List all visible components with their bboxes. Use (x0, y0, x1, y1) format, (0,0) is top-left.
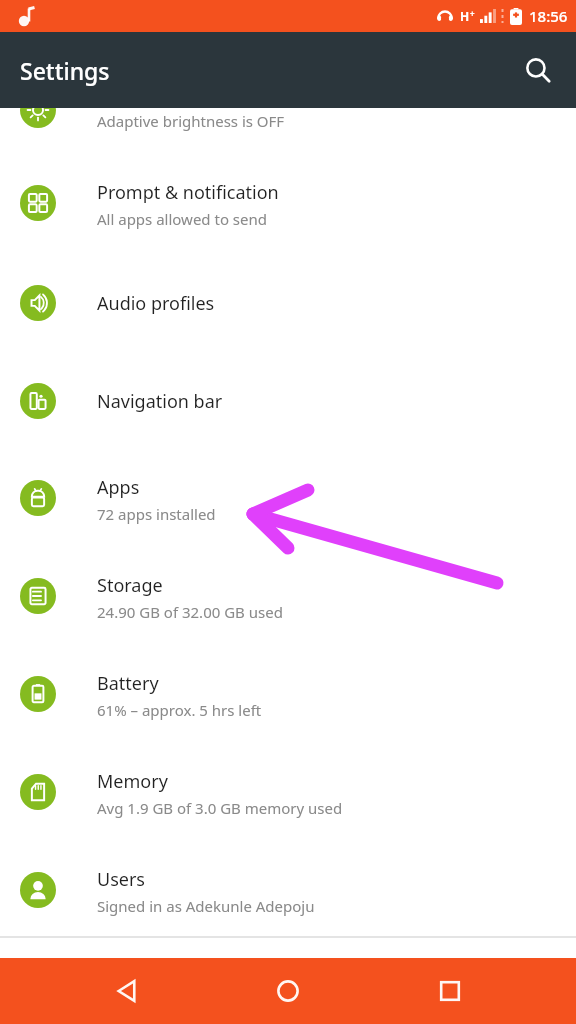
button[interactable]: Recent apps (415, 958, 485, 1024)
staticText: Settings (20, 55, 110, 86)
staticText: Battery (97, 671, 159, 696)
staticText: Adaptive brightness is OFF (97, 111, 285, 131)
button[interactable]: Apps (0, 449, 576, 547)
button[interactable]: Battery (0, 645, 576, 743)
button[interactable]: Audio profiles (0, 254, 576, 352)
staticText: Users (97, 867, 145, 892)
staticText: Apps (97, 475, 140, 500)
staticText: Signed in as Adekunle Adepoju (97, 896, 315, 916)
button[interactable]: Back (92, 958, 162, 1024)
staticText: H (460, 8, 470, 24)
button[interactable]: Navigation bar (0, 352, 576, 450)
staticText: 24.90 GB of 32.00 GB used (97, 602, 283, 622)
button[interactable]: Display (0, 61, 576, 159)
button[interactable]: Users (0, 841, 576, 939)
button[interactable]: Search (514, 46, 562, 94)
button[interactable]: Storage (0, 547, 576, 645)
staticText: + (470, 8, 475, 19)
staticText: 61% – approx. 5 hrs left (97, 700, 262, 720)
button[interactable]: Memory (0, 743, 576, 841)
staticText: Prompt & notification (97, 180, 279, 205)
button[interactable]: Prompt and notification (0, 154, 576, 252)
staticText: Navigation bar (97, 389, 223, 414)
staticText: 18:56 (529, 6, 568, 26)
staticText: 72 apps installed (97, 504, 216, 524)
staticText: Memory (97, 769, 168, 794)
staticText: Avg 1.9 GB of 3.0 GB memory used (97, 798, 343, 818)
button[interactable]: Home (253, 958, 323, 1024)
staticText: Storage (97, 573, 163, 598)
staticText: All apps allowed to send (97, 209, 268, 229)
staticText: Audio profiles (97, 291, 215, 316)
